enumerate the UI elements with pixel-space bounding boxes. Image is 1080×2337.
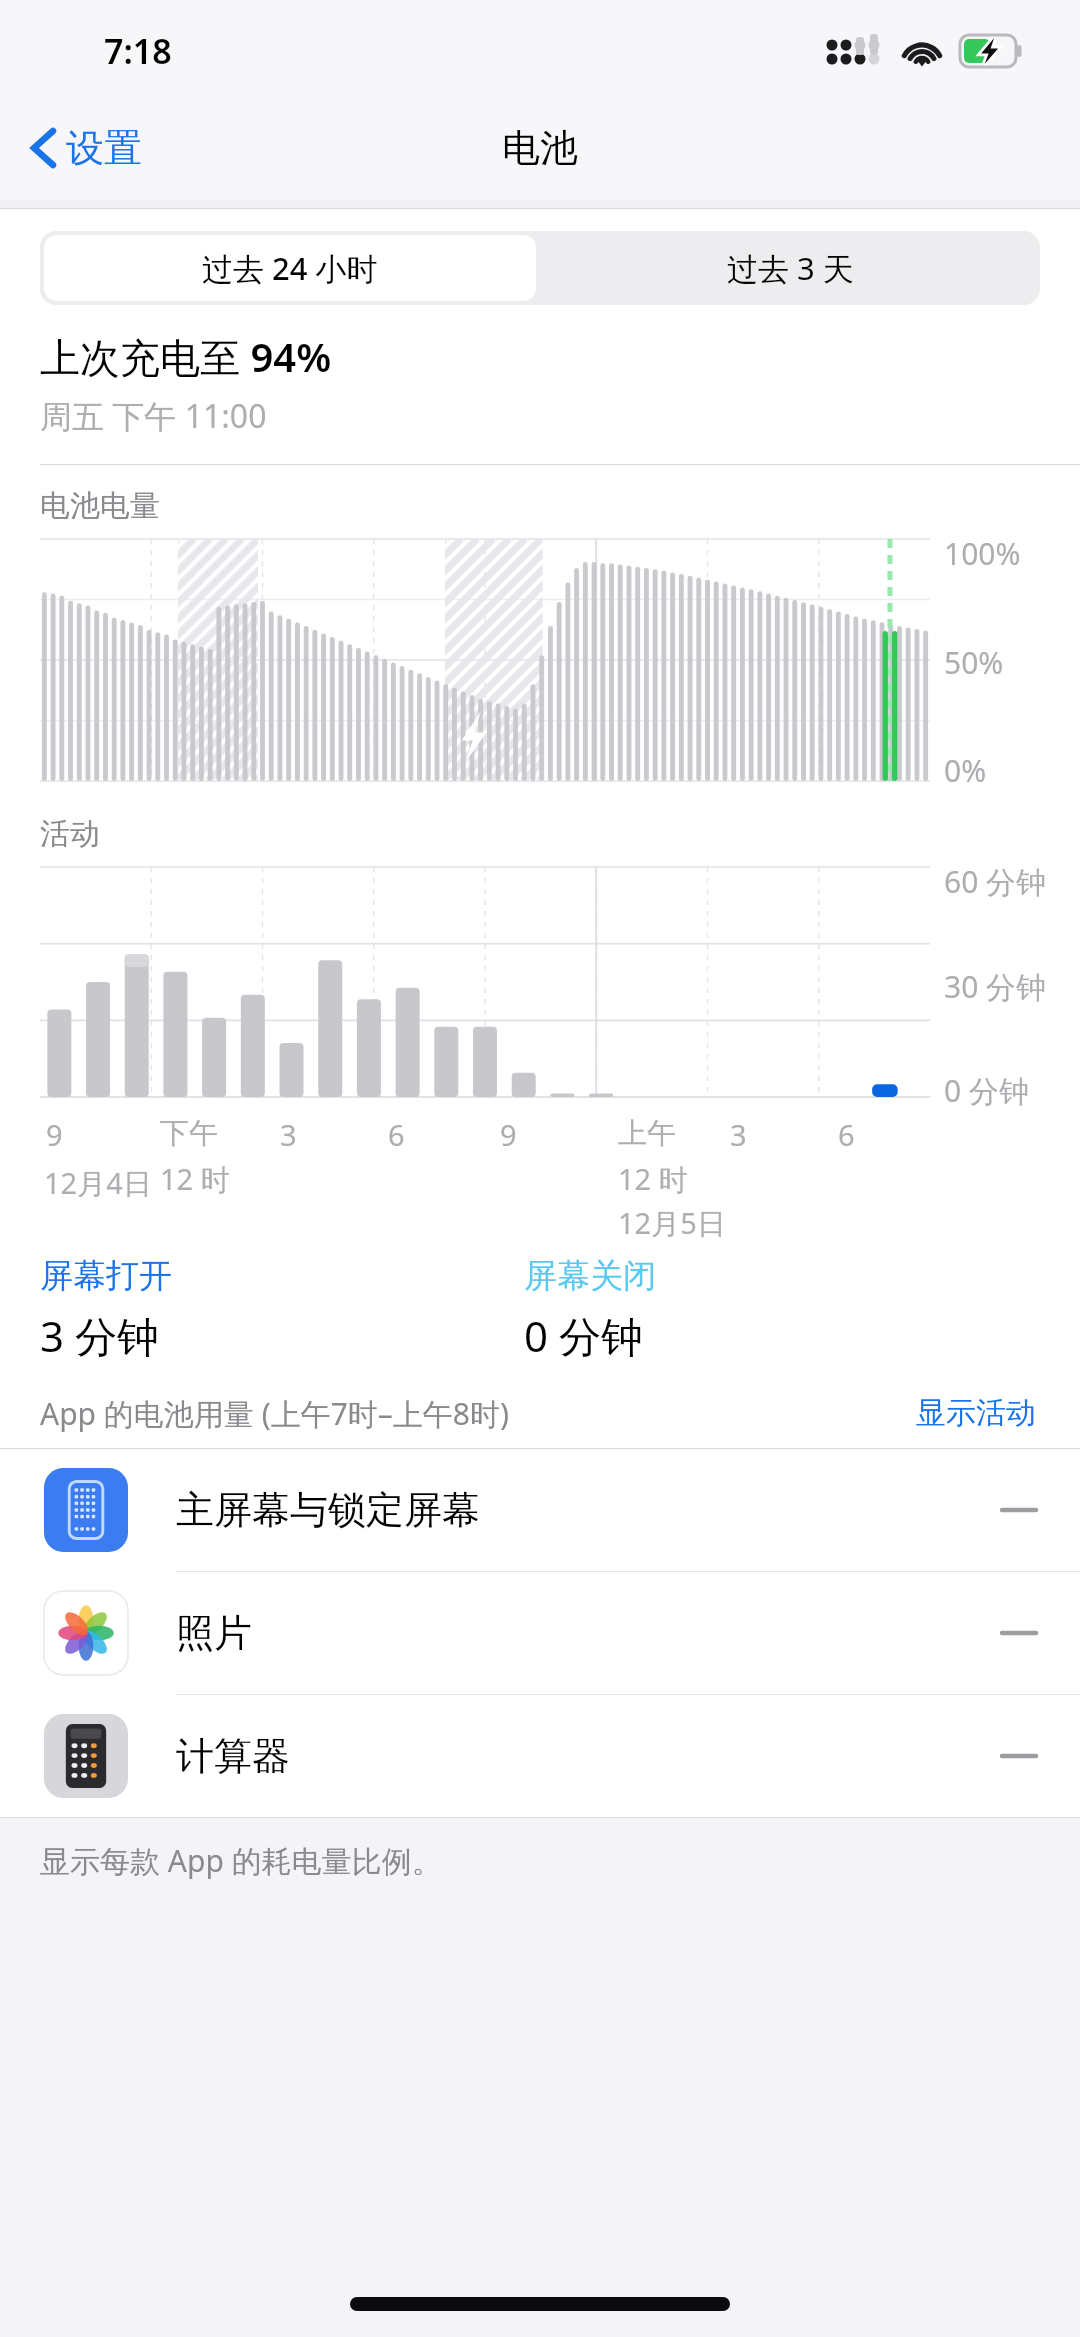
staticText: 电池电量 (40, 487, 160, 525)
staticText: 6 (388, 1115, 405, 1154)
staticText: App 的电池用量 (上午7时–上午8时) (40, 1393, 509, 1434)
staticText: 6 (838, 1115, 855, 1154)
staticText: 30 分钟 (944, 966, 1047, 1007)
staticText: 3 分钟 (40, 1307, 159, 1364)
staticText: 12 时 (618, 1159, 688, 1199)
staticText: 活动 (40, 815, 100, 853)
staticText: 50% (944, 642, 1004, 683)
button[interactable]: 主屏幕与锁定屏幕 (0, 1449, 1080, 1571)
staticText: 3 (280, 1115, 297, 1154)
staticText: 照片 (176, 1609, 252, 1657)
button[interactable]: 照片 (0, 1572, 1080, 1694)
staticText: 12 时 (160, 1159, 230, 1199)
staticText: 周五 下午 11:00 (40, 394, 267, 438)
button[interactable]: Back (22, 118, 150, 178)
staticText: 60 分钟 (944, 861, 1047, 902)
staticText: 屏幕打开 (40, 1255, 172, 1297)
button[interactable]: 过去 24 小时 (44, 235, 536, 301)
button[interactable]: 过去 3 天 (540, 231, 1040, 305)
other: Back (30, 126, 56, 170)
staticText: 过去 24 小时 (202, 247, 378, 289)
staticText: 0 分钟 (944, 1070, 1029, 1111)
staticText: 下午 (160, 1115, 218, 1152)
staticText: 12月4日 (44, 1163, 152, 1203)
staticText: 100% (944, 533, 1021, 574)
staticText: 上次充电至 94% (40, 329, 332, 384)
staticText: 过去 3 天 (727, 247, 854, 289)
staticText: 计算器 (176, 1732, 290, 1780)
staticText: 上午 (618, 1115, 676, 1152)
staticText: 显示每款 App 的耗电量比例。 (40, 1840, 442, 1881)
button[interactable]: 计算器 (0, 1695, 1080, 1817)
staticText: 电池 (502, 124, 578, 172)
staticText: 主屏幕与锁定屏幕 (176, 1486, 480, 1534)
staticText: 屏幕关闭 (524, 1255, 656, 1297)
staticText: 3 (730, 1115, 747, 1154)
staticText: 0 分钟 (524, 1307, 643, 1364)
staticText: 9 (500, 1115, 517, 1154)
staticText: 7:18 (104, 28, 172, 74)
staticText: 12月5日 (618, 1203, 726, 1241)
staticText: 设置 (66, 124, 142, 172)
button[interactable]: 显示活动 (912, 1390, 1040, 1436)
staticText: 0% (944, 750, 987, 791)
staticText: 显示活动 (916, 1394, 1036, 1432)
staticText: 9 (46, 1115, 63, 1154)
